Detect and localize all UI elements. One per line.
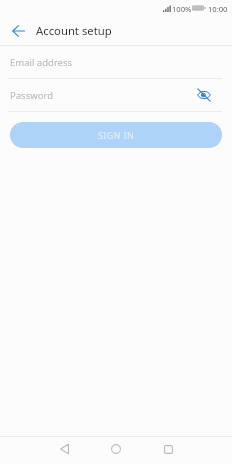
staticText: Email address (10, 56, 73, 69)
button[interactable]: Back (50, 435, 78, 463)
button[interactable]: Recents (154, 435, 182, 463)
staticText: SIGN IN (98, 129, 135, 141)
staticText: Account setup (36, 23, 112, 38)
staticText: Password (10, 89, 53, 102)
button[interactable]: Password (0, 86, 232, 112)
button[interactable]: SIGN IN (10, 122, 222, 148)
staticText: 10:00 (208, 4, 228, 14)
button[interactable]: Show password (194, 84, 214, 104)
button[interactable]: Home (102, 435, 130, 463)
button[interactable]: Email address (0, 53, 232, 79)
staticText: 100% (172, 4, 192, 14)
button[interactable]: Back (6, 18, 31, 43)
